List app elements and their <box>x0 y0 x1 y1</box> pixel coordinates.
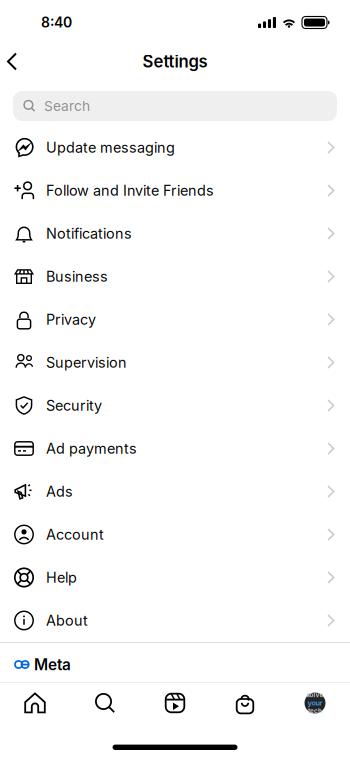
staticText: your <box>307 699 322 707</box>
staticText: Update messaging <box>46 139 175 156</box>
button[interactable]: Ads <box>0 470 350 513</box>
button[interactable]: Account <box>0 513 350 556</box>
staticText: Follow and Invite Friends <box>46 182 214 199</box>
staticText: About <box>46 612 88 629</box>
staticText: Search <box>44 98 90 114</box>
button[interactable]: Help <box>0 556 350 599</box>
staticText: Settings <box>142 51 207 72</box>
staticText: 8:40 <box>41 14 72 31</box>
button[interactable]: Shop <box>210 683 280 723</box>
button[interactable]: Privacy <box>0 298 350 341</box>
staticText: Privacy <box>46 311 96 328</box>
button[interactable]: Reels <box>140 683 210 723</box>
button[interactable]: Supervision <box>0 341 350 384</box>
button[interactable]: Business <box>0 255 350 298</box>
button[interactable]: About <box>0 599 350 642</box>
staticText: Business <box>46 268 108 285</box>
button[interactable]: Follow and Invite Friends <box>0 169 350 212</box>
staticText: Ad payments <box>46 440 137 457</box>
staticText: Help <box>46 569 77 586</box>
staticText: Supervision <box>46 354 127 371</box>
staticText: Security <box>46 397 102 414</box>
staticText: Meta <box>34 655 71 674</box>
staticText: Account <box>46 526 104 543</box>
button[interactable]: Security <box>0 384 350 427</box>
button[interactable]: Notifications <box>0 212 350 255</box>
staticText: Ads <box>46 483 73 500</box>
button[interactable]: Ad payments <box>0 427 350 470</box>
staticText: tech <box>308 707 322 715</box>
button[interactable]: Update messaging <box>0 126 350 169</box>
button[interactable]: Home <box>0 683 70 723</box>
staticText: Notifications <box>46 225 132 242</box>
button[interactable]: Profile <box>280 683 350 723</box>
button[interactable]: Search <box>70 683 140 723</box>
staticText: solve <box>306 691 323 699</box>
button[interactable]: Back <box>0 47 26 75</box>
